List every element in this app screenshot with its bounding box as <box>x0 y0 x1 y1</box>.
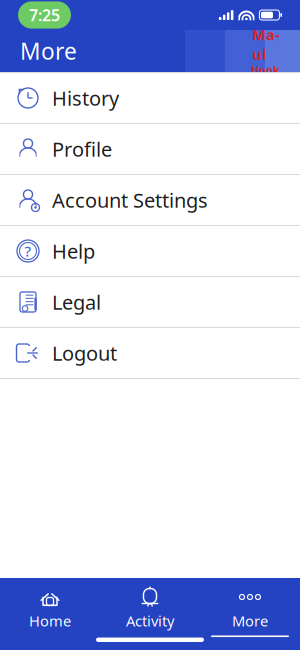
button[interactable]: More <box>200 578 300 637</box>
staticText: Account Settings <box>52 187 208 213</box>
button[interactable]: Activity <box>100 578 200 637</box>
button[interactable]: ? <box>0 226 300 277</box>
button[interactable]: Account Settings <box>0 175 300 226</box>
button[interactable]: Legal <box>0 277 300 328</box>
staticText: History <box>52 85 119 111</box>
staticText: Help <box>52 238 95 264</box>
staticText: 7:25 <box>29 4 60 26</box>
button[interactable]: Home <box>0 578 100 637</box>
button[interactable]: Profile <box>0 124 300 175</box>
staticText: More <box>232 611 268 630</box>
staticText: Logout <box>52 340 117 366</box>
staticText: Profile <box>52 136 112 162</box>
staticText: Activity <box>126 611 174 630</box>
button[interactable]: Logout <box>0 328 300 379</box>
staticText: Legal <box>52 289 101 315</box>
staticText: More <box>20 36 77 66</box>
staticText: ? <box>24 241 31 261</box>
button[interactable]: History <box>0 73 300 124</box>
staticText: Home <box>29 611 71 630</box>
staticText: Hook <box>251 63 280 77</box>
staticText: Maui <box>252 25 280 64</box>
